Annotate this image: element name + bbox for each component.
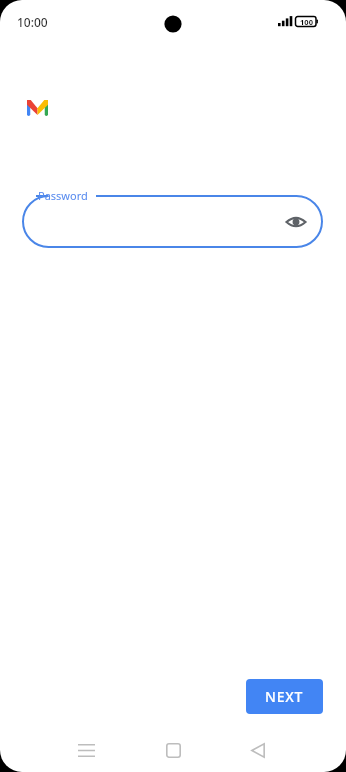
button[interactable]: Show password [22, 195, 323, 248]
staticText: Password [38, 188, 88, 203]
staticText: NEXT [265, 687, 304, 706]
button[interactable]: Back [240, 732, 276, 768]
staticText: 10:00 [17, 14, 48, 30]
staticText: 100 [300, 17, 313, 27]
button[interactable]: Show password [279, 205, 313, 239]
button[interactable]: NEXT [246, 679, 323, 714]
button[interactable]: Recent apps [68, 732, 104, 768]
button[interactable]: Home [155, 732, 191, 768]
